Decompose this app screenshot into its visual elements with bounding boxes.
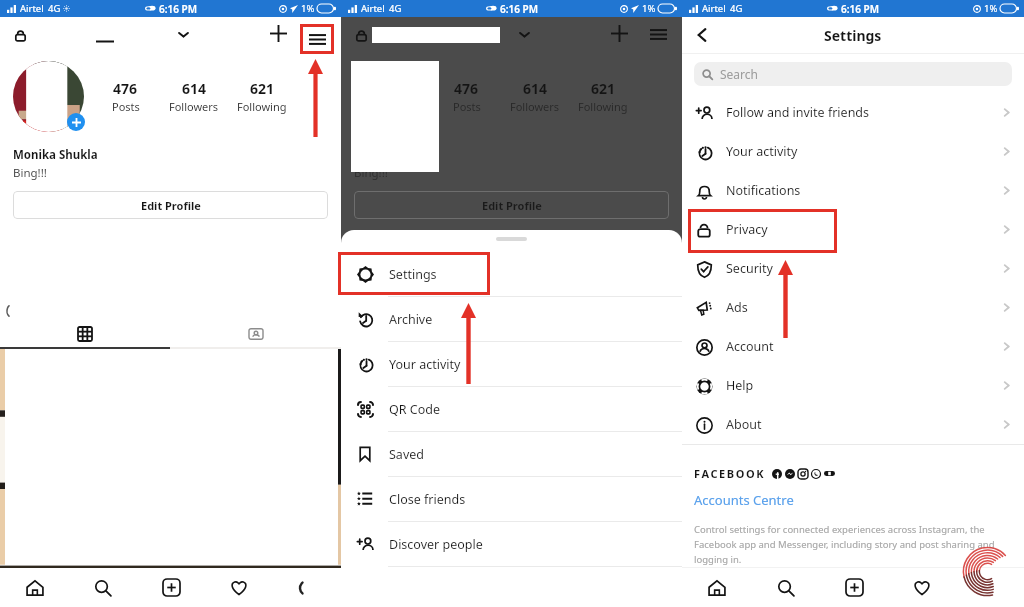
staticText: Help xyxy=(726,377,754,394)
staticText: Privacy xyxy=(726,221,768,238)
staticText: Bing!!! xyxy=(13,165,47,181)
button[interactable]: Search xyxy=(69,568,137,607)
staticText: Followers xyxy=(510,99,560,114)
staticText: Edit Profile xyxy=(482,198,542,213)
button[interactable]: Security xyxy=(682,249,1024,288)
staticText: Edit Profile xyxy=(141,198,201,213)
staticText: 1% xyxy=(642,2,656,15)
staticText: Your activity xyxy=(726,143,798,160)
staticText: 1% xyxy=(301,2,315,15)
staticText: Discover people xyxy=(389,536,483,553)
staticText: 621 xyxy=(591,79,616,98)
staticText: Followers xyxy=(169,99,219,114)
staticText: Follow and invite friends xyxy=(726,104,870,121)
staticText: Airtel xyxy=(20,2,44,15)
button[interactable]: New post xyxy=(267,22,290,45)
button[interactable]: About xyxy=(682,405,1024,444)
staticText: 4G xyxy=(389,2,402,15)
staticText: Following xyxy=(578,99,628,114)
staticText: 614 xyxy=(182,79,207,98)
button[interactable]: Profile xyxy=(956,568,1024,607)
staticText: 1% xyxy=(984,2,998,15)
staticText: Posts xyxy=(112,99,140,114)
button[interactable]: Tagged photos xyxy=(170,321,341,347)
staticText: Notifications xyxy=(726,182,801,199)
button[interactable]: Add to story xyxy=(67,113,85,131)
button[interactable]: Close friends xyxy=(341,477,682,521)
staticText: Your activity xyxy=(389,356,461,373)
staticText: 6:16 PM xyxy=(500,2,538,16)
button[interactable]: Activity xyxy=(205,568,273,607)
staticText: 476 xyxy=(454,79,479,98)
button[interactable]: Your activity xyxy=(341,342,682,386)
staticText: Bing!!! xyxy=(354,165,388,181)
button[interactable]: Private account xyxy=(351,25,371,45)
button[interactable]: Create xyxy=(820,568,888,607)
staticText: 476 xyxy=(113,79,138,98)
staticText: 4G xyxy=(48,2,61,15)
button[interactable]: Switch account xyxy=(174,25,192,43)
staticText: 614 xyxy=(523,79,548,98)
button[interactable]: Help xyxy=(682,366,1024,405)
button[interactable]: Private account xyxy=(10,25,30,45)
button[interactable]: Home xyxy=(0,568,69,607)
staticText: Airtel xyxy=(702,2,726,15)
staticText: 4G xyxy=(730,2,743,15)
button[interactable]: Saved xyxy=(341,432,682,476)
button[interactable]: New post xyxy=(608,22,631,45)
staticText: Settings xyxy=(389,266,437,283)
button[interactable]: Create xyxy=(137,568,205,607)
button[interactable]: Search xyxy=(751,568,820,607)
staticText: 6:16 PM xyxy=(159,2,197,16)
staticText: Following xyxy=(237,99,287,114)
button[interactable]: Accounts Centre xyxy=(694,491,794,509)
button[interactable]: Discover people xyxy=(341,522,682,566)
button[interactable]: Profile xyxy=(273,568,341,607)
button[interactable]: Settings xyxy=(341,252,682,296)
button[interactable]: Account xyxy=(682,327,1024,366)
staticText: Airtel xyxy=(361,2,385,15)
staticText: Close friends xyxy=(389,491,466,508)
button[interactable]: Menu xyxy=(300,24,334,54)
button[interactable]: Search xyxy=(694,62,1012,86)
staticText: Archive xyxy=(389,311,433,328)
staticText: Search xyxy=(720,66,758,82)
staticText: 621 xyxy=(250,79,275,98)
button[interactable]: Edit Profile xyxy=(13,191,328,219)
button[interactable]: Menu xyxy=(647,23,669,45)
button[interactable]: QR Code xyxy=(341,387,682,431)
staticText: Saved xyxy=(389,446,424,463)
button[interactable]: Switch account xyxy=(515,25,533,43)
staticText: Settings xyxy=(824,26,882,45)
staticText: About xyxy=(726,416,762,433)
button[interactable]: Back xyxy=(691,24,713,46)
staticText: Account xyxy=(726,338,774,355)
staticText: Posts xyxy=(453,99,481,114)
button[interactable]: Follow and invite friends xyxy=(682,93,1024,132)
button[interactable]: Notifications xyxy=(682,171,1024,210)
button[interactable]: Your activity xyxy=(682,132,1024,171)
staticText: Security xyxy=(726,260,773,277)
staticText: Accounts Centre xyxy=(694,491,794,509)
staticText: Control settings for connected experienc… xyxy=(694,523,995,566)
button[interactable]: Archive xyxy=(341,297,682,341)
button[interactable]: Home xyxy=(682,568,751,607)
button[interactable]: Privacy xyxy=(682,210,1024,249)
staticText: 6:16 PM xyxy=(841,2,879,16)
button[interactable]: Posts grid xyxy=(0,321,170,347)
staticText: FACEBOOK xyxy=(694,466,766,481)
staticText: QR Code xyxy=(389,401,440,418)
staticText: Ads xyxy=(726,299,748,316)
staticText: Monika Shukla xyxy=(13,147,98,163)
button[interactable]: Activity xyxy=(888,568,956,607)
button[interactable]: Ads xyxy=(682,288,1024,327)
